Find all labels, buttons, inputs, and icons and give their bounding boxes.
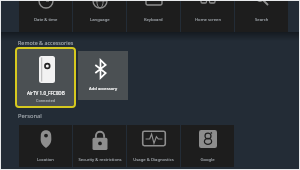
button[interactable]: AirTV 1.0_FFC0DB [17,49,74,106]
staticText: AirTV 1.0_FFC0DB [27,90,65,96]
button[interactable]: Usage & Diagnostics [127,125,180,167]
staticText: Location [37,157,54,163]
staticText: Keyboard [144,17,163,23]
button[interactable]: Keyboard [127,0,180,32]
staticText: Usage & Diagnostics [133,157,174,163]
button[interactable]: Date & time [19,0,72,32]
staticText: Date & time [34,17,58,23]
button[interactable]: Add accessory [78,51,128,100]
staticText: Add accessory [89,86,118,92]
button[interactable]: Search [235,0,288,32]
staticText: Language [90,17,110,23]
button[interactable]: Security & restrictions [73,125,126,167]
staticText: Connected [36,98,56,103]
staticText: Remote & accessories [18,39,74,46]
button[interactable]: Language [73,0,126,32]
staticText: Home screen [195,17,221,23]
staticText: Search [255,17,269,23]
staticText: Google [200,157,215,163]
button[interactable]: Home screen [181,0,234,32]
button[interactable]: Location [19,125,72,167]
staticText: Security & restrictions [78,157,122,163]
button[interactable]: Google [181,125,234,167]
staticText: Personal [18,112,42,120]
